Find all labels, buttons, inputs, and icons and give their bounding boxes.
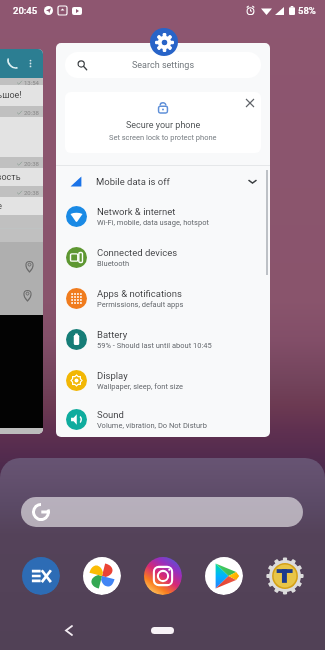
- button[interactable]: Search settings: [65, 52, 261, 78]
- staticText: Network & internet: [97, 206, 176, 217]
- button[interactable]: Titanium Backup: [265, 556, 304, 595]
- staticText: ольшое!: [0, 90, 22, 101]
- button[interactable]: Secure your phone: [65, 92, 261, 153]
- button[interactable]: Apps & notifications: [56, 278, 270, 319]
- button[interactable]: Mobile data is off: [56, 166, 270, 196]
- button[interactable]: Instagram: [143, 556, 182, 595]
- staticText: Connected devices: [97, 247, 178, 258]
- staticText: 20:38: [24, 160, 39, 167]
- button[interactable]: Battery: [56, 319, 270, 360]
- staticText: Wallpaper, sleep, font size: [97, 382, 184, 391]
- button[interactable]: Home: [151, 627, 174, 634]
- button[interactable]: Google Photos: [82, 556, 121, 595]
- button[interactable]: Google Play: [204, 556, 243, 595]
- staticText: Display: [97, 370, 128, 381]
- staticText: 20:38: [24, 109, 39, 116]
- button[interactable]: Search: [21, 497, 303, 527]
- staticText: Mobile data is off: [96, 176, 170, 187]
- staticText: 20:45: [13, 5, 38, 16]
- staticText: ь не: [0, 201, 3, 212]
- button[interactable]: Network & internet: [56, 196, 270, 237]
- staticText: Set screen lock to protect phone: [109, 133, 217, 142]
- staticText: 20:38: [24, 189, 39, 196]
- staticText: новость: [0, 172, 21, 183]
- button[interactable]: Sound: [56, 401, 270, 437]
- staticText: Permissions, default apps: [97, 300, 184, 309]
- staticText: Bluetooth: [97, 259, 130, 268]
- staticText: Sound: [97, 409, 124, 420]
- staticText: Apps & notifications: [97, 288, 182, 299]
- staticText: Volume, vibration, Do Not Disturb: [97, 421, 207, 430]
- staticText: 59% - Should last until about 10:45: [97, 341, 212, 350]
- button[interactable]: Dismiss: [239, 92, 261, 114]
- button[interactable]: Connected devices: [56, 237, 270, 278]
- staticText: Wi-Fi, mobile, data usage, hotspot: [97, 218, 209, 227]
- button[interactable]: Display: [56, 360, 270, 401]
- staticText: 58%: [298, 5, 316, 16]
- staticText: Battery: [97, 329, 128, 340]
- button[interactable]: Back: [60, 621, 78, 639]
- button[interactable]: Settings: [150, 28, 178, 56]
- staticText: Secure your phone: [126, 120, 201, 131]
- staticText: 13:54: [24, 79, 39, 86]
- staticText: Search settings: [132, 60, 195, 71]
- button[interactable]: Ex Kernel Manager: [21, 556, 60, 595]
